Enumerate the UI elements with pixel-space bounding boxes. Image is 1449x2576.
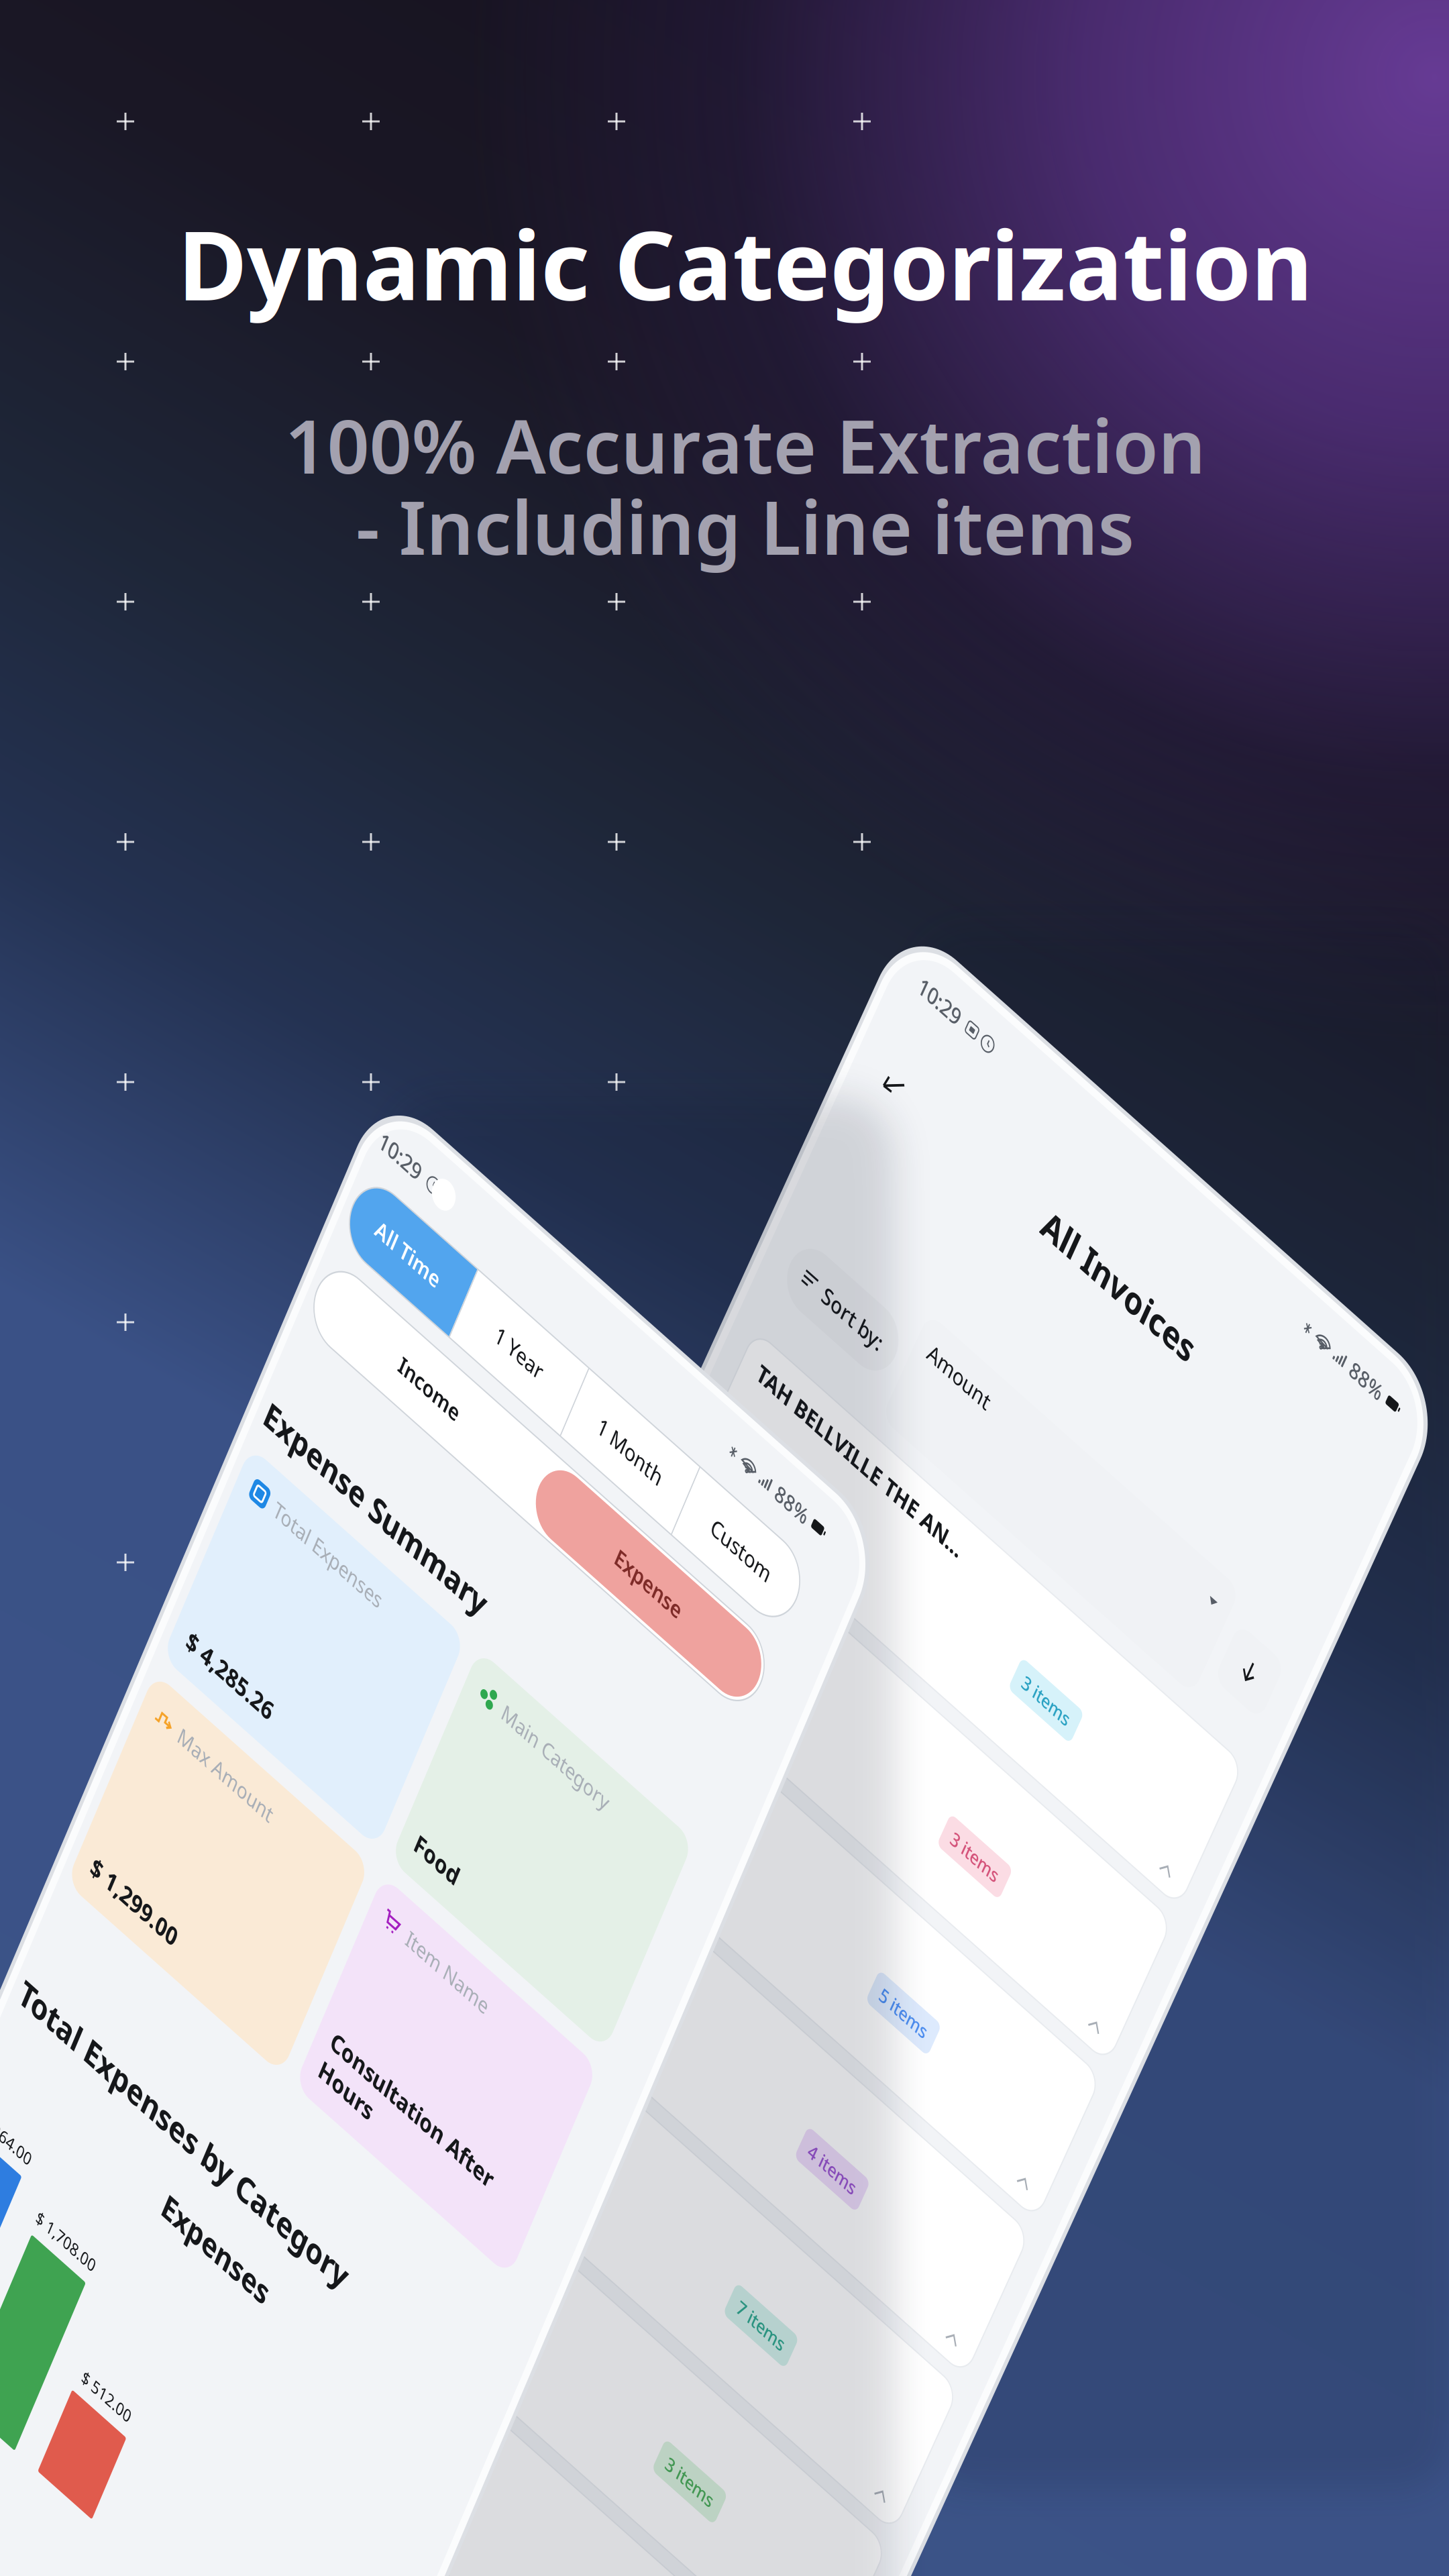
staticText: 3 items (442, 504, 504, 528)
button[interactable]: Max Amount (20, 623, 308, 851)
button[interactable]: Sort descending (623, 321, 685, 383)
staticText: 7 items (442, 1191, 504, 1215)
staticText: $ 1,299.00 (38, 803, 151, 834)
staticText: Expense Summary (20, 317, 314, 360)
button[interactable]: Market (36, 1116, 689, 1273)
button[interactable]: Sort by: (40, 321, 180, 383)
button[interactable]: Total Expenses (20, 377, 308, 606)
button[interactable]: Fuel (36, 1459, 689, 1616)
button[interactable]: Cafe (36, 1287, 689, 1444)
staticText: Total Expenses by Category (20, 945, 456, 988)
staticText: Sort by: (84, 338, 162, 366)
button[interactable]: All Time (20, 78, 167, 152)
button[interactable]: Custom (466, 78, 613, 152)
button[interactable]: Item Name (325, 623, 613, 851)
staticText: All Invoices (263, 118, 462, 165)
button[interactable]: Store (36, 944, 689, 1101)
staticText: 3 items (442, 1363, 504, 1387)
button[interactable]: Main Category (325, 377, 613, 606)
button[interactable]: 1 Month (317, 78, 465, 152)
staticText: 100% Accurate Extraction (285, 396, 1206, 494)
staticText: Amount (209, 309, 290, 338)
staticText: - Including Line items (356, 477, 1135, 575)
button[interactable]: TAH BELLVILLE THE AN… (36, 429, 689, 586)
staticText: Dynamic Categorization (178, 201, 1313, 326)
staticText: Main Category (374, 395, 515, 422)
button[interactable]: Beach (36, 772, 689, 929)
staticText: 1 Month (349, 101, 433, 130)
staticText: Consultation After Hours (343, 772, 557, 834)
button[interactable]: Bell (36, 600, 689, 757)
staticText: All Time (52, 101, 136, 130)
staticText: TAH BELLVILLE THE AN… (56, 443, 328, 473)
button[interactable]: Amount (193, 294, 610, 410)
